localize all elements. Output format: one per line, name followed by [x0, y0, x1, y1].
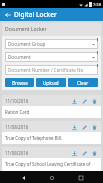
staticText: Document — [8, 54, 92, 60]
button[interactable]: True Copy of School Leaving Certificate … — [2, 158, 101, 171]
staticText: Document Number / Certificate No — [8, 67, 84, 73]
staticText: Clear — [77, 80, 89, 86]
staticText: Digital Locker — [14, 10, 57, 19]
button[interactable]: Delete — [90, 97, 98, 105]
staticText: True Copy of School Leaving Certificate … — [5, 161, 98, 168]
staticText: Upload — [43, 80, 59, 86]
button[interactable]: Document — [5, 52, 98, 62]
staticText: 7:38 — [93, 2, 101, 7]
staticText: True Copy of Telephone Bill. — [5, 135, 63, 141]
button[interactable]: Clear — [68, 78, 98, 87]
button[interactable]: Upload — [36, 78, 66, 87]
button[interactable]: Download — [70, 123, 78, 131]
staticText: 11/08/2016 — [5, 150, 70, 156]
button[interactable]: Delete — [90, 149, 98, 157]
button[interactable]: Browse — [5, 78, 34, 87]
staticText: Browse — [12, 80, 28, 86]
staticText: Document Locker — [5, 26, 47, 33]
button[interactable]: Document Number / Certificate No — [5, 65, 98, 75]
button[interactable]: Recents — [75, 172, 86, 183]
button[interactable]: Download — [70, 149, 78, 157]
button[interactable]: Edit — [80, 97, 88, 105]
staticText: Ration Card — [5, 109, 30, 115]
button[interactable]: Document Group — [5, 39, 98, 49]
staticText: 11/08/2016 — [5, 124, 70, 130]
button[interactable]: Home — [46, 172, 57, 183]
button[interactable]: Back — [18, 172, 29, 183]
staticText: 11/10/2016 — [5, 98, 70, 104]
staticText: Document Group — [8, 41, 92, 47]
button[interactable]: Download — [70, 97, 78, 105]
button[interactable]: Edit — [80, 149, 88, 157]
button[interactable]: Delete — [90, 123, 98, 131]
button[interactable]: Ration Card — [2, 106, 101, 118]
button[interactable]: Back — [3, 10, 12, 19]
button[interactable]: True Copy of Telephone Bill. — [2, 132, 101, 144]
button[interactable]: Edit — [80, 123, 88, 131]
